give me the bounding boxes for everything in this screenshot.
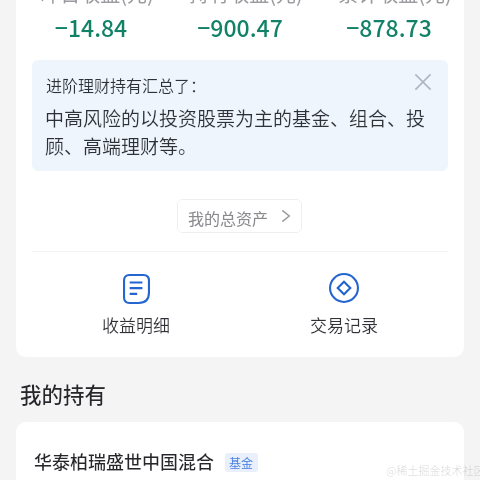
button[interactable]: 关闭 [408, 67, 438, 97]
staticText: 基金 [229, 454, 254, 471]
staticText: 交易记录 [310, 312, 378, 337]
staticText: 华泰柏瑞盛世中国混合 [34, 448, 214, 474]
button[interactable]: 华泰柏瑞盛世中国混合 [16, 422, 464, 480]
staticText: −900.47 [165, 10, 315, 43]
button[interactable]: 交易记录 [283, 273, 405, 337]
staticText: 中高风险的以投资股票为主的基金、组合、投顾、高端理财等。 [45, 104, 437, 160]
button[interactable]: 我的总资产 [177, 199, 302, 233]
button[interactable]: 收益明细 [75, 274, 197, 337]
staticText: 收益明细 [102, 312, 170, 337]
staticText: 我的持有 [20, 378, 107, 409]
staticText: −878.73 [314, 10, 464, 43]
staticText: 进阶理财持有汇总了： [46, 73, 207, 96]
staticText: @稀土掘金技术社区 [386, 462, 480, 478]
staticText: 累计收益(元) [320, 0, 464, 8]
staticText: 我的总资产 [188, 206, 269, 229]
staticText: 昨日收益(元) [22, 0, 172, 8]
staticText: −14.84 [16, 10, 166, 43]
staticText: 持有收益(元) [171, 0, 321, 8]
